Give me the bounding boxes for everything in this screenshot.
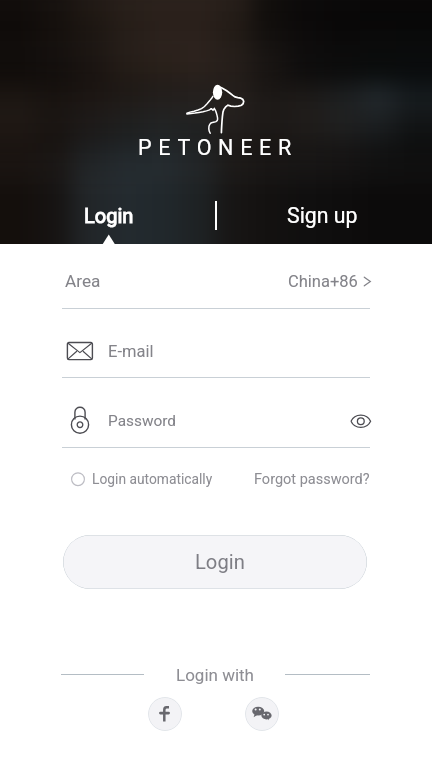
- button[interactable]: China+86: [240, 264, 370, 298]
- button[interactable]: Show password: [344, 405, 376, 437]
- staticText: Password: [108, 412, 176, 430]
- staticText: Login: [195, 550, 245, 574]
- staticText: Forgot password?: [254, 471, 370, 488]
- staticText: Login with: [176, 665, 254, 685]
- button[interactable]: Login with WeChat: [245, 697, 279, 731]
- staticText: China+86: [288, 272, 358, 291]
- staticText: Login: [84, 204, 134, 227]
- button[interactable]: Forgot password?: [246, 466, 370, 492]
- button[interactable]: Login automatically: [64, 466, 216, 492]
- staticText: PETONEER: [138, 135, 298, 160]
- staticText: E-mail: [108, 342, 154, 361]
- button[interactable]: Login with Facebook: [148, 697, 182, 731]
- staticText: Login automatically: [92, 471, 213, 487]
- button[interactable]: Login: [63, 535, 367, 589]
- staticText: Sign up: [287, 203, 358, 228]
- staticText: Area: [65, 271, 101, 291]
- button[interactable]: Sign up: [286, 199, 358, 231]
- button[interactable]: Login: [76, 199, 142, 231]
